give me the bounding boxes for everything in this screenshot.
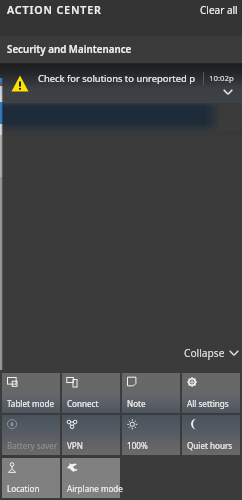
staticText: 100% [127,440,148,451]
button[interactable]: Location [2,458,60,498]
staticText: Location [7,483,40,494]
staticText: VPN [67,440,83,451]
button[interactable]: Clear all [193,0,242,22]
staticText: Battery saver [7,440,58,451]
staticText: Clear all [200,3,238,17]
button[interactable]: Connect [62,373,120,413]
staticText: 10:02p [209,73,234,84]
button[interactable]: VPN [62,415,120,455]
button[interactable]: All settings [182,373,240,413]
staticText: Security and Maintenance [7,43,132,56]
button[interactable]: Expand notification [214,83,242,101]
button[interactable]: ACTION CENTER [0,0,110,23]
button[interactable]: Check for solutions to unreported p [0,62,242,105]
button[interactable]: 100% [122,415,180,455]
staticText: Connect [67,398,99,409]
staticText: ACTION CENTER [7,3,102,18]
staticText: All settings [187,398,229,409]
button[interactable]: Collapse [177,341,242,365]
button[interactable]: Tablet mode [2,373,60,413]
staticText: Airplane mode [67,483,120,494]
button[interactable]: Security and Maintenance [0,41,138,58]
staticText: Tablet mode [7,398,55,409]
button[interactable]: Quiet hours [182,415,240,455]
button[interactable]: Battery saver [2,415,60,455]
staticText: Collapse [184,346,225,360]
staticText: Quiet hours [187,440,233,451]
button[interactable]: Note [122,373,180,413]
staticText: Check for solutions to unreported p [38,72,195,85]
staticText: Note [127,398,146,409]
button[interactable]: Airplane mode [62,458,120,498]
